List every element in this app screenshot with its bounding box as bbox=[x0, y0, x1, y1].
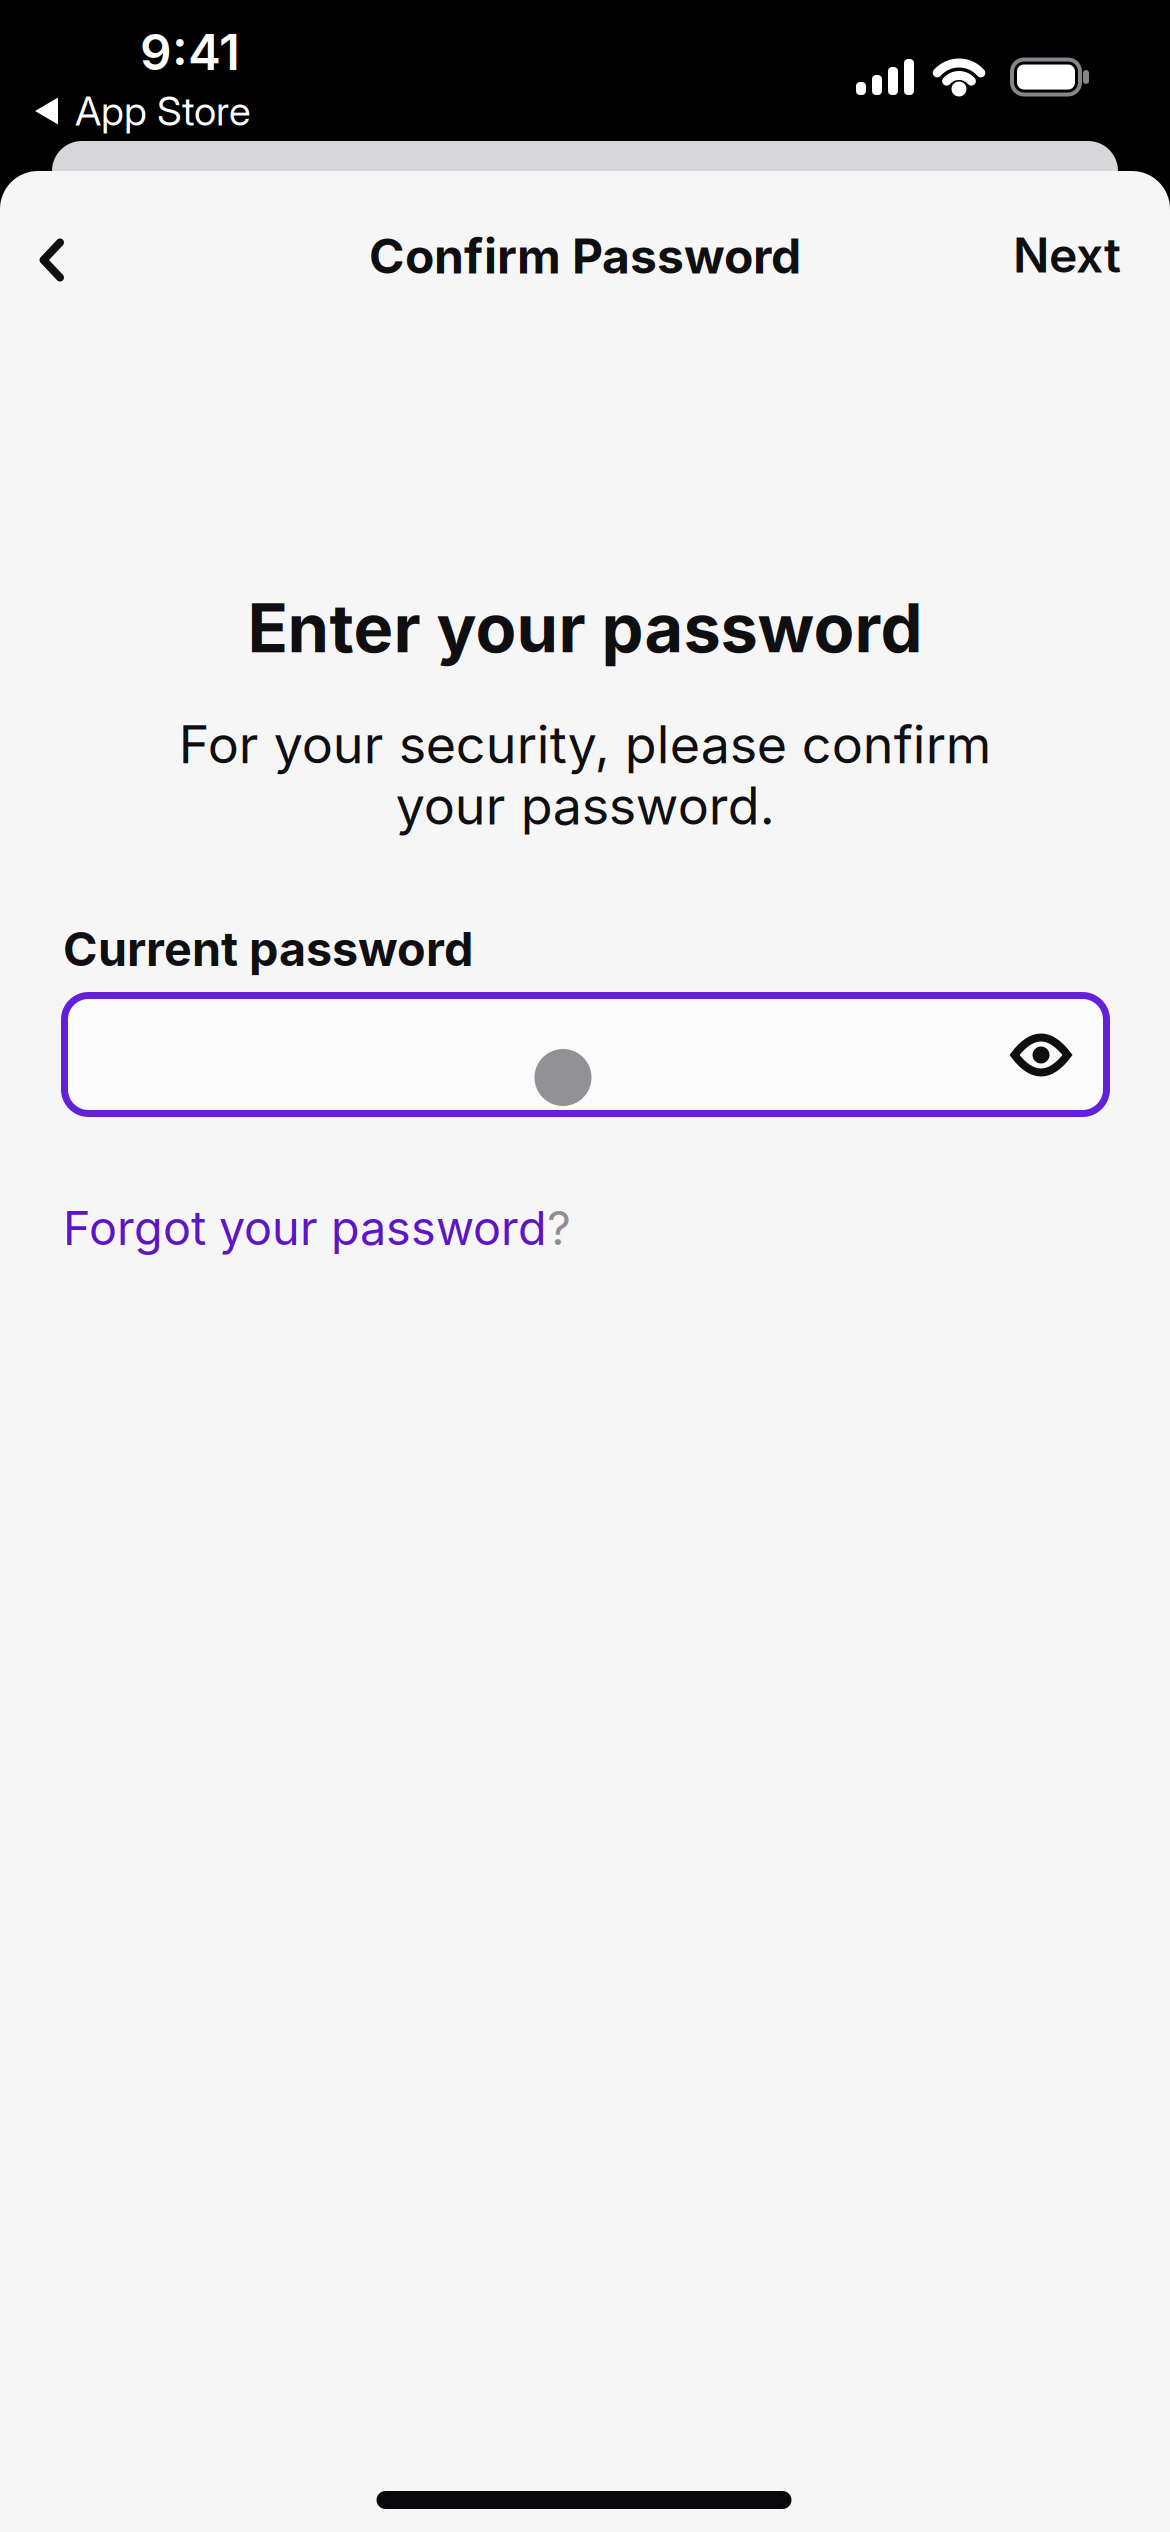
button[interactable]: Forgot your password bbox=[63, 1200, 571, 1256]
staticText: Enter your password bbox=[247, 589, 922, 667]
button[interactable]: Show password bbox=[996, 1010, 1086, 1100]
staticText: Next bbox=[1013, 227, 1121, 283]
button[interactable]: Back to App Store bbox=[33, 87, 251, 135]
staticText: Confirm Password bbox=[369, 228, 801, 284]
staticText: App Store bbox=[75, 87, 251, 135]
button[interactable]: Back bbox=[32, 231, 72, 287]
button[interactable]: Next bbox=[1013, 227, 1121, 283]
staticText: Forgot your password bbox=[63, 1200, 547, 1256]
staticText: 9:41 bbox=[140, 23, 240, 81]
staticText: Current password bbox=[63, 921, 473, 977]
staticText: ? bbox=[547, 1200, 571, 1256]
button[interactable]: Current password bbox=[61, 992, 1110, 1117]
staticText: For your security, please confirm your p… bbox=[178, 714, 991, 836]
